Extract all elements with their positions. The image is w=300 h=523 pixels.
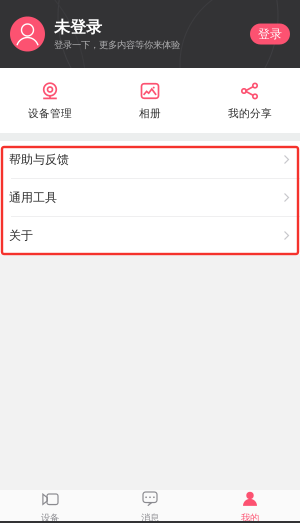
button[interactable]: 关于 bbox=[0, 217, 300, 254]
staticText: 登录一下，更多内容等你来体验 bbox=[54, 39, 180, 51]
staticText: 设备 bbox=[41, 512, 59, 523]
button[interactable]: 消息 bbox=[100, 485, 200, 523]
button[interactable]: 设备 bbox=[0, 485, 100, 523]
staticText: 未登录 bbox=[54, 17, 102, 37]
button[interactable]: 登录 bbox=[250, 23, 290, 44]
staticText: 关于 bbox=[9, 228, 33, 243]
button[interactable]: 我的分享 bbox=[200, 68, 300, 133]
staticText: 设备管理 bbox=[28, 107, 72, 120]
staticText: 登录 bbox=[258, 27, 282, 41]
button[interactable]: 通用工具 bbox=[0, 179, 300, 216]
staticText: 我的 bbox=[241, 512, 259, 523]
staticText: 相册 bbox=[139, 107, 161, 120]
staticText: 我的分享 bbox=[228, 107, 272, 120]
staticText: 消息 bbox=[141, 512, 159, 523]
staticText: 通用工具 bbox=[9, 190, 57, 205]
button[interactable]: 帮助与反馈 bbox=[0, 141, 300, 178]
button[interactable]: 相册 bbox=[100, 68, 200, 133]
button[interactable]: 我的 bbox=[200, 485, 300, 523]
staticText: 帮助与反馈 bbox=[9, 152, 69, 167]
button[interactable]: 设备管理 bbox=[0, 68, 100, 133]
